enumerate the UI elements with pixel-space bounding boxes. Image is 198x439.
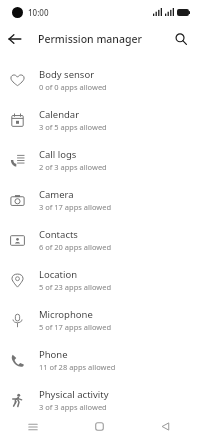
staticText: 2 of 3 apps allowed	[39, 162, 107, 172]
button[interactable]: Back	[132, 414, 198, 439]
staticText: Camera	[39, 188, 74, 201]
staticText: 5 of 17 apps allowed	[39, 322, 112, 332]
staticText: 3 of 3 apps allowed	[39, 402, 107, 412]
staticText: Permission manager	[38, 32, 142, 46]
button[interactable]: Back	[0, 24, 30, 54]
button[interactable]: Call logs	[0, 140, 198, 180]
staticText: Calendar	[39, 108, 80, 121]
staticText: 6 of 20 apps allowed	[39, 242, 112, 252]
staticText: Contacts	[39, 228, 78, 241]
button[interactable]: Physical activity	[0, 380, 198, 420]
button[interactable]: Microphone	[0, 300, 198, 340]
button[interactable]: Camera	[0, 180, 198, 220]
staticText: 11 of 28 apps allowed	[39, 362, 116, 372]
staticText: Microphone	[39, 308, 93, 321]
staticText: Body sensor	[39, 68, 95, 81]
staticText: Phone	[39, 348, 68, 361]
button[interactable]: Phone	[0, 340, 198, 380]
button[interactable]: Recent apps	[0, 414, 66, 439]
staticText: Physical activity	[39, 388, 109, 401]
staticText: Location	[39, 268, 78, 281]
staticText: 3 of 5 apps allowed	[39, 122, 107, 132]
button[interactable]: Body sensor	[0, 60, 198, 100]
button[interactable]: Home	[66, 414, 132, 439]
button[interactable]: Search	[167, 25, 195, 53]
staticText: Call logs	[39, 148, 77, 161]
staticText: 3 of 17 apps allowed	[39, 202, 112, 212]
staticText: 0 of 0 apps allowed	[39, 82, 107, 92]
staticText: 10:00	[28, 7, 49, 18]
button[interactable]: Contacts	[0, 220, 198, 260]
button[interactable]: Location	[0, 260, 198, 300]
staticText: 5 of 23 apps allowed	[39, 282, 112, 292]
button[interactable]: Calendar	[0, 100, 198, 140]
